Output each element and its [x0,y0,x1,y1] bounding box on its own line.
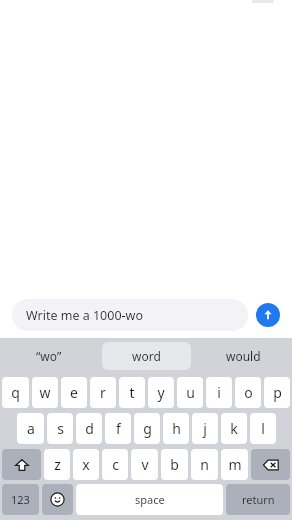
staticText: z [54,455,61,474]
staticText: p [273,383,282,402]
staticText: x [82,455,90,474]
button[interactable]: z [44,449,70,480]
button[interactable]: j [192,413,218,444]
staticText: c [112,455,119,474]
button[interactable]: i [206,377,232,408]
staticText: “wo” [36,348,62,364]
button[interactable]: Write me a 1000-wo [12,299,248,331]
button[interactable]: b [161,449,188,480]
staticText: m [228,455,242,474]
button[interactable]: u [177,377,203,408]
staticText: e [70,383,78,402]
button[interactable]: w [32,377,58,408]
staticText: r [100,383,106,402]
button[interactable]: would [195,342,292,370]
staticText: j [203,419,207,438]
staticText: s [57,419,64,438]
staticText: a [27,419,35,438]
button[interactable]: y [148,377,174,408]
button[interactable]: o [235,377,261,408]
staticText: u [186,383,195,402]
staticText: would [226,348,261,364]
button[interactable]: Emoji [42,484,73,515]
button[interactable]: return [226,484,290,515]
staticText: v [141,455,149,474]
button[interactable]: e [61,377,87,408]
button[interactable]: word [102,342,191,370]
button[interactable]: h [163,413,189,444]
button[interactable]: Shift [2,449,41,480]
staticText: b [170,455,179,474]
staticText: o [244,383,253,402]
button[interactable]: n [191,449,218,480]
button[interactable]: c [102,449,128,480]
staticText: q [11,383,20,402]
staticText: y [157,383,165,402]
staticText: d [85,419,94,438]
button[interactable]: a [17,413,44,444]
button[interactable]: f [105,413,131,444]
staticText: l [261,419,265,438]
staticText: g [143,419,152,438]
button[interactable]: t [119,377,145,408]
button[interactable]: “wo” [0,342,98,370]
button[interactable]: m [221,449,248,480]
staticText: w [39,383,51,402]
button[interactable]: q [2,377,29,408]
staticText: space [135,492,165,507]
staticText: t [129,383,135,402]
button[interactable]: space [76,484,223,515]
staticText: Write me a 1000-wo [26,307,143,324]
staticText: k [230,419,238,438]
button[interactable]: s [47,413,73,444]
staticText: return [242,492,275,507]
staticText: f [116,419,121,438]
button[interactable]: d [76,413,102,444]
staticText: 123 [11,492,30,507]
button[interactable]: g [134,413,160,444]
button[interactable]: x [73,449,99,480]
button[interactable]: l [250,413,276,444]
button[interactable]: r [90,377,116,408]
button[interactable]: Backspace [251,449,290,480]
button[interactable]: p [264,377,290,408]
staticText: h [172,419,181,438]
button[interactable]: v [131,449,158,480]
staticText: word [132,348,161,364]
button[interactable]: Send [256,303,280,327]
button[interactable]: k [221,413,247,444]
staticText: i [217,383,221,402]
staticText: n [200,455,209,474]
button[interactable]: 123 [2,484,39,515]
